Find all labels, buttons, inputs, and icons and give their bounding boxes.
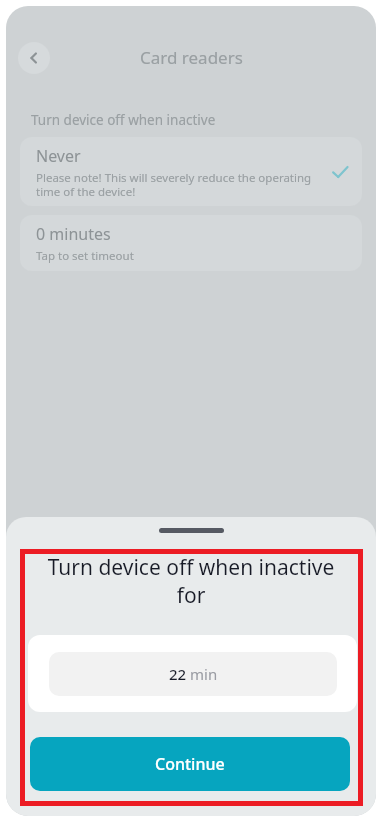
button[interactable]: Drag handle	[159, 528, 224, 533]
staticText: Please note! This will severely reduce t…	[36, 170, 318, 199]
button[interactable]: Back	[18, 42, 50, 74]
staticText: Never	[36, 145, 81, 167]
staticText: 0 minutes	[36, 223, 111, 245]
button[interactable]: 22 min	[28, 635, 357, 712]
button[interactable]: 0 minutes	[20, 215, 362, 271]
staticText: Turn device off when inactive for	[44, 553, 338, 609]
staticText: 22 min	[169, 664, 218, 684]
staticText: Continue	[155, 753, 225, 775]
button[interactable]: Continue	[30, 737, 350, 791]
staticText: Tap to set timeout	[36, 248, 134, 264]
staticText: Card readers	[140, 46, 243, 69]
button[interactable]: Never	[20, 137, 362, 206]
staticText: Turn device off when inactive	[31, 111, 216, 129]
